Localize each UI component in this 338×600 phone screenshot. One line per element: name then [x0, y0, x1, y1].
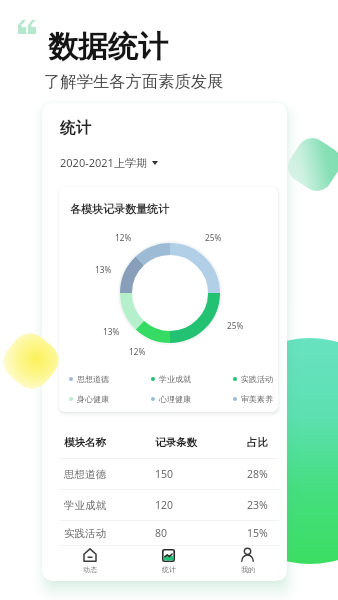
- staticText: 心理健康: [159, 394, 191, 404]
- button[interactable]: 统计: [129, 545, 208, 578]
- staticText: 学业成就: [64, 499, 155, 512]
- button[interactable]: 实践活动: [233, 374, 278, 384]
- staticText: 实践活动: [241, 374, 273, 384]
- button[interactable]: 学业成就: [64, 490, 279, 520]
- staticText: 我的: [241, 565, 255, 574]
- staticText: 12%: [115, 232, 132, 243]
- staticText: 占比: [247, 436, 268, 449]
- staticText: 统计: [162, 565, 176, 574]
- staticText: 思想道德: [64, 468, 155, 481]
- staticText: 统计: [60, 118, 91, 138]
- staticText: 记录条数: [155, 436, 247, 449]
- staticText: 学业成就: [159, 374, 191, 384]
- staticText: 审美素养: [241, 394, 273, 404]
- staticText: 13%: [103, 326, 120, 337]
- staticText: 实践活动: [64, 527, 155, 540]
- staticText: 动态: [83, 565, 97, 574]
- button[interactable]: 实践活动: [64, 521, 279, 545]
- staticText: 思想道德: [77, 374, 109, 384]
- staticText: 数据统计: [48, 28, 168, 66]
- staticText: 15%: [247, 526, 268, 540]
- button[interactable]: 我的: [208, 545, 287, 578]
- button[interactable]: 思想道德: [64, 459, 279, 489]
- staticText: 身心健康: [77, 394, 109, 404]
- button[interactable]: 2020-2021上学期: [60, 155, 158, 170]
- staticText: 25%: [205, 232, 222, 243]
- staticText: 2020-2021上学期: [60, 155, 147, 170]
- button[interactable]: 学业成就: [151, 374, 233, 384]
- button[interactable]: 心理健康: [151, 394, 233, 404]
- staticText: 了解学生各方面素质发展: [44, 71, 224, 92]
- staticText: 23%: [247, 498, 268, 512]
- button[interactable]: 思想道德: [69, 374, 151, 384]
- button[interactable]: 动态: [50, 545, 129, 578]
- staticText: 25%: [227, 320, 244, 331]
- staticText: 模块名称: [64, 436, 155, 449]
- staticText: 各模块记录数量统计: [70, 202, 169, 216]
- staticText: 120: [155, 498, 247, 512]
- staticText: 13%: [95, 264, 112, 275]
- staticText: 80: [155, 526, 247, 540]
- button[interactable]: 身心健康: [69, 394, 151, 404]
- staticText: 12%: [129, 346, 146, 357]
- staticText: 28%: [247, 467, 268, 481]
- staticText: 150: [155, 467, 247, 481]
- button[interactable]: 审美素养: [233, 394, 278, 404]
